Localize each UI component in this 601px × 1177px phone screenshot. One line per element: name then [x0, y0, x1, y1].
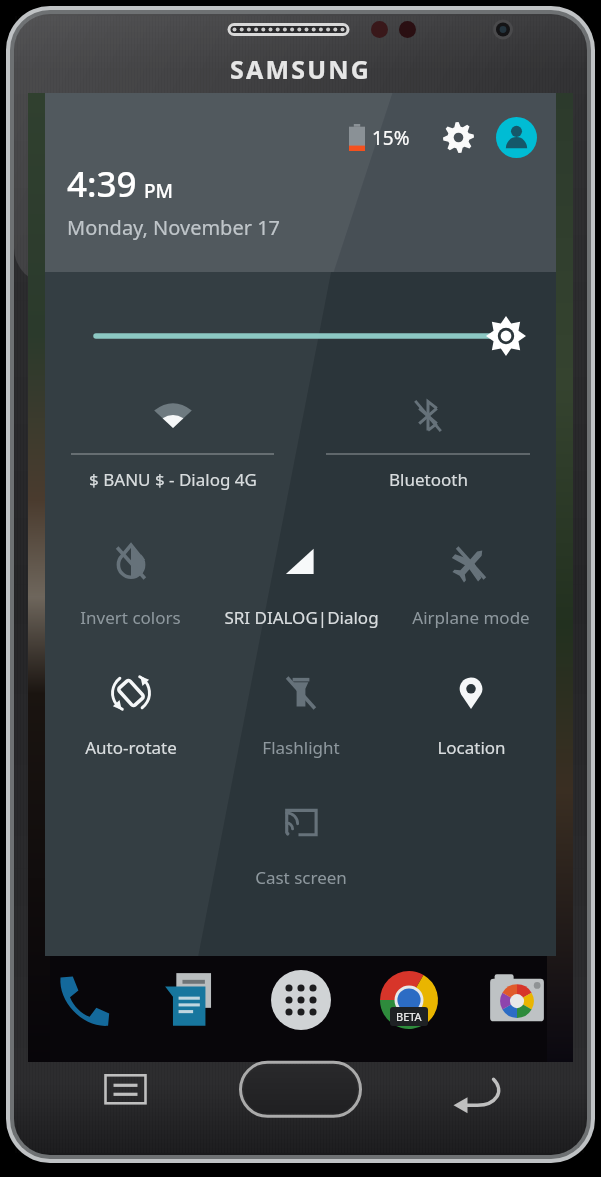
staticText: Flashlight — [262, 736, 340, 759]
staticText: PM — [144, 178, 174, 204]
button[interactable]: Camera — [483, 966, 551, 1034]
staticText: Invert colors — [80, 606, 181, 629]
staticText: SAMSUNG — [230, 52, 372, 86]
staticText: Airplane mode — [412, 606, 530, 629]
staticText: Location — [437, 736, 506, 759]
button[interactable]: Battery 15 percent — [345, 120, 414, 155]
button[interactable]: Phone — [50, 966, 118, 1034]
staticText: Bluetooth — [389, 468, 468, 491]
button[interactable]: Location — [386, 658, 556, 788]
button[interactable]: $ BANU $ - Dialog 4G — [45, 388, 300, 506]
button[interactable]: Auto-rotate — [45, 658, 216, 788]
button[interactable]: Airplane mode — [386, 528, 556, 658]
staticText: BETA — [396, 1009, 422, 1024]
button[interactable]: Messages — [158, 966, 226, 1034]
button[interactable]: SRI DIALOG|Dialog — [216, 528, 386, 658]
staticText: SRI DIALOG|Dialog — [224, 606, 379, 629]
button[interactable]: 4:39 — [67, 160, 281, 241]
staticText: 4:39 — [67, 160, 137, 208]
button[interactable]: Settings — [436, 115, 480, 159]
staticText: $ BANU $ - Dialog 4G — [89, 468, 257, 491]
staticText: Monday, November 17 — [67, 214, 281, 241]
button[interactable]: Bluetooth — [300, 388, 556, 506]
button[interactable]: User profile — [494, 115, 538, 159]
button[interactable]: Invert colors — [45, 528, 216, 658]
button[interactable]: Brightness — [45, 310, 556, 362]
button[interactable]: Flashlight — [216, 658, 386, 788]
button[interactable]: Chrome Beta — [375, 966, 443, 1034]
staticText: 15% — [372, 125, 410, 151]
button[interactable]: Cast screen — [216, 788, 386, 918]
button[interactable]: Apps — [267, 966, 335, 1034]
staticText: Auto-rotate — [85, 736, 177, 759]
staticText: Cast screen — [255, 866, 347, 889]
